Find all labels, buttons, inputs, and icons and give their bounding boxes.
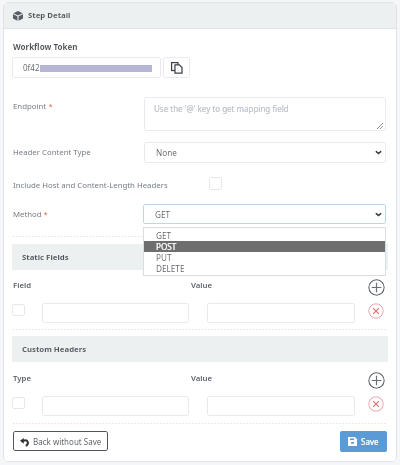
- staticText: Back without Save: [33, 436, 102, 447]
- staticText: Step Detail: [28, 10, 71, 21]
- staticText: GET: [156, 230, 172, 241]
- staticText: Endpoint: [13, 101, 47, 112]
- button[interactable]: Copy token: [163, 57, 190, 78]
- button[interactable]: Name input: [42, 396, 189, 416]
- staticText: *: [42, 210, 48, 220]
- button[interactable]: Include Host and Content-Length Headers: [209, 177, 222, 190]
- staticText: None: [156, 147, 177, 158]
- staticText: Value: [191, 373, 213, 384]
- staticText: Custom Headers: [22, 344, 87, 355]
- staticText: Type: [13, 373, 31, 384]
- staticText: Field: [13, 280, 32, 291]
- button[interactable]: Select row: [12, 397, 25, 409]
- button[interactable]: DELETE: [143, 263, 386, 274]
- button[interactable]: None: [144, 142, 386, 163]
- staticText: Include Host and Content-Length Headers: [13, 180, 168, 191]
- button[interactable]: Value input: [207, 396, 355, 416]
- staticText: Save: [361, 436, 379, 447]
- button[interactable]: 0f42: [12, 57, 161, 78]
- staticText: GET: [155, 209, 171, 220]
- staticText: Header Content Type: [13, 147, 91, 158]
- button[interactable]: Add row: [368, 372, 385, 389]
- button[interactable]: Use the '@' key to get mapping field: [144, 97, 386, 131]
- button[interactable]: Remove row: [368, 303, 384, 319]
- button[interactable]: GET: [143, 230, 386, 241]
- button[interactable]: Back without Save: [13, 431, 108, 451]
- button[interactable]: Select row: [12, 304, 25, 316]
- button[interactable]: Add row: [368, 279, 385, 296]
- button[interactable]: PUT: [143, 252, 386, 263]
- staticText: Method: [13, 209, 42, 220]
- staticText: Use the '@' key to get mapping field: [154, 103, 289, 114]
- button[interactable]: Value input: [207, 303, 355, 323]
- staticText: POST: [156, 241, 177, 252]
- staticText: Value: [191, 280, 213, 291]
- button[interactable]: Remove row: [368, 396, 384, 412]
- button[interactable]: GET: [143, 204, 386, 224]
- staticText: PUT: [156, 252, 172, 263]
- staticText: *: [47, 102, 53, 112]
- staticText: Workflow Token: [13, 41, 78, 52]
- button[interactable]: Save: [340, 431, 387, 452]
- button[interactable]: Name input: [42, 303, 189, 323]
- staticText: Static Fields: [22, 252, 69, 263]
- staticText: 0f42: [23, 62, 40, 73]
- staticText: DELETE: [156, 263, 185, 274]
- button[interactable]: POST: [143, 241, 386, 252]
